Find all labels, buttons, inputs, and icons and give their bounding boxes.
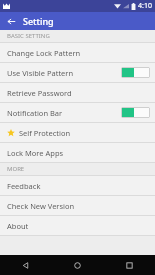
button[interactable]: About	[0, 216, 155, 235]
staticText: Lock More Apps	[7, 148, 150, 158]
staticText: 4:10	[138, 1, 152, 11]
button[interactable]: Feedback	[0, 176, 155, 195]
button[interactable]: Recent apps	[103, 255, 155, 275]
button[interactable]: Use Visible Pattern	[0, 63, 155, 82]
staticText: Setting	[23, 15, 54, 27]
staticText: Use Visible Pattern	[7, 68, 121, 78]
button[interactable]: Change Lock Pattern	[0, 43, 155, 62]
button[interactable]: Toggle Notification Bar	[121, 107, 150, 118]
staticText: MORE	[7, 165, 25, 173]
button[interactable]: Toggle Use Visible Pattern	[121, 67, 150, 78]
staticText: BASIC SETTING	[7, 32, 50, 40]
staticText: Notification Bar	[7, 108, 121, 118]
button[interactable]: Lock More Apps	[0, 143, 155, 162]
button[interactable]: Home	[51, 255, 103, 275]
staticText: Retrieve Password	[7, 88, 150, 98]
button[interactable]: Check New Version	[0, 196, 155, 215]
button[interactable]: Back	[0, 255, 51, 275]
staticText: Self Protection	[19, 128, 150, 138]
staticText: Check New Version	[7, 201, 150, 211]
button[interactable]: Back	[0, 12, 23, 30]
button[interactable]: Retrieve Password	[0, 83, 155, 102]
staticText: Change Lock Pattern	[7, 48, 150, 58]
staticText: About	[7, 221, 150, 231]
button[interactable]: Notification Bar	[0, 103, 155, 122]
staticText: Feedback	[7, 181, 150, 191]
button[interactable]: Self Protection	[0, 123, 155, 142]
